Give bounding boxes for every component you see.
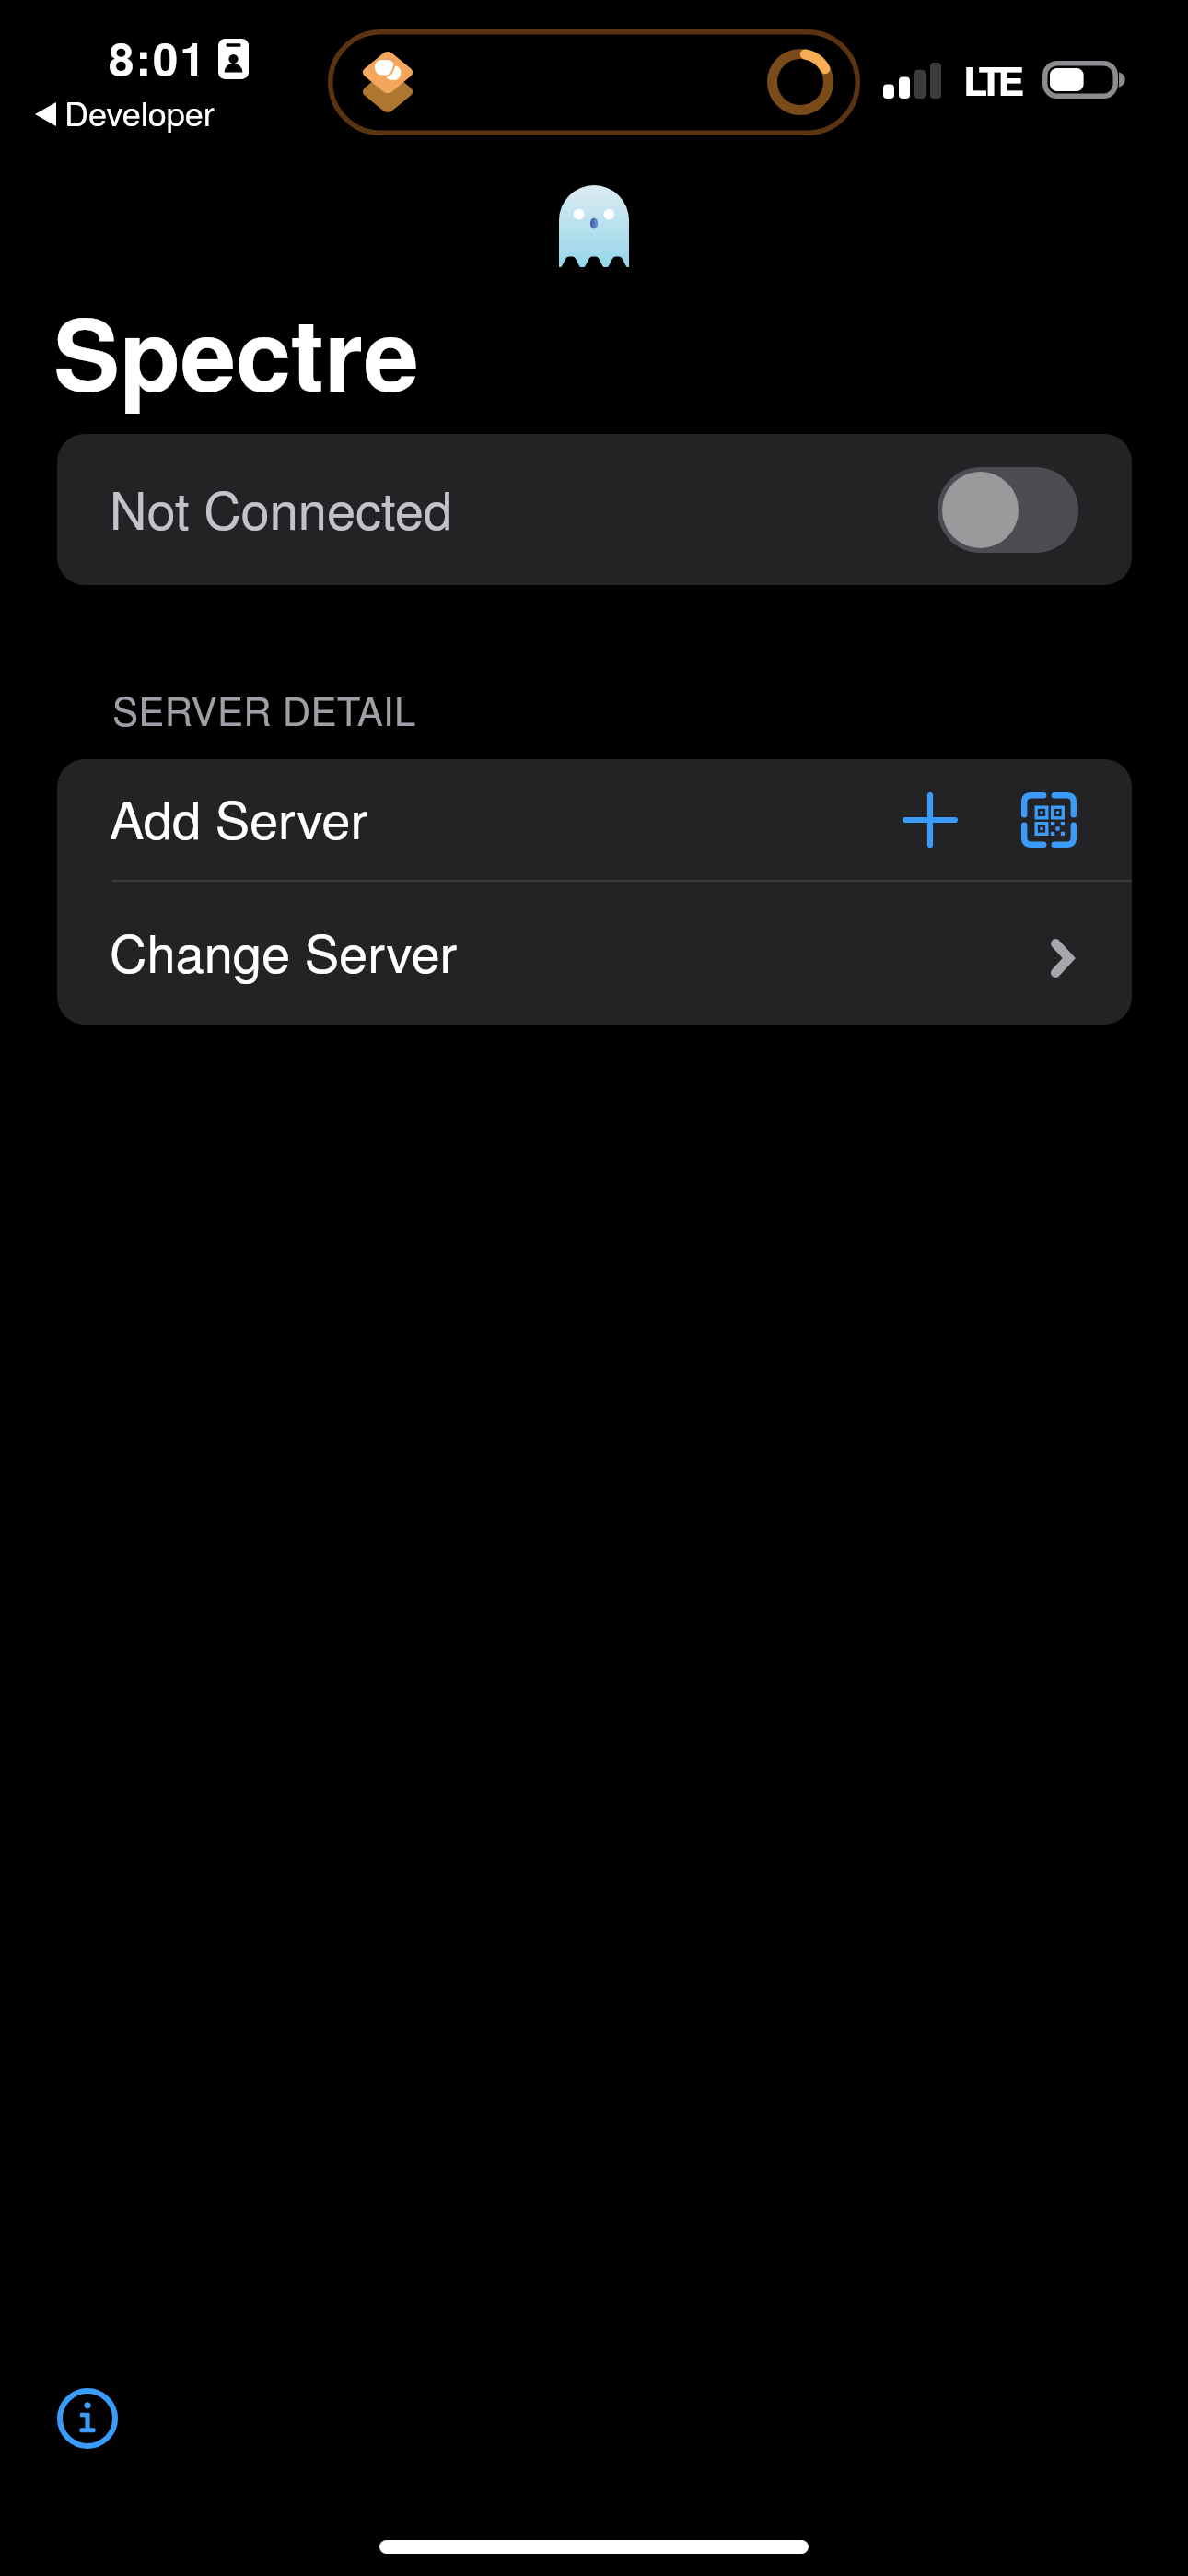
staticText: SERVER DETAIL xyxy=(112,682,416,737)
button[interactable]: Back to Developer xyxy=(35,90,215,138)
button[interactable]: Scan QR code xyxy=(1014,785,1084,855)
staticText: Spectre xyxy=(53,279,419,422)
staticText: LTE xyxy=(963,52,1019,109)
button[interactable]: Info xyxy=(47,2378,128,2459)
button[interactable]: Add server xyxy=(895,785,965,855)
staticText: Developer xyxy=(64,88,215,136)
staticText: Change Server xyxy=(110,914,458,988)
button[interactable]: Not Connected xyxy=(57,434,1132,585)
button[interactable]: Connection toggle xyxy=(938,467,1078,553)
staticText: Add Server xyxy=(110,780,368,854)
staticText: 8:01 xyxy=(109,25,207,89)
button[interactable]: Change Server xyxy=(57,882,1132,1025)
staticText: Not Connected xyxy=(110,471,453,544)
button[interactable]: Add Server xyxy=(57,759,1132,880)
